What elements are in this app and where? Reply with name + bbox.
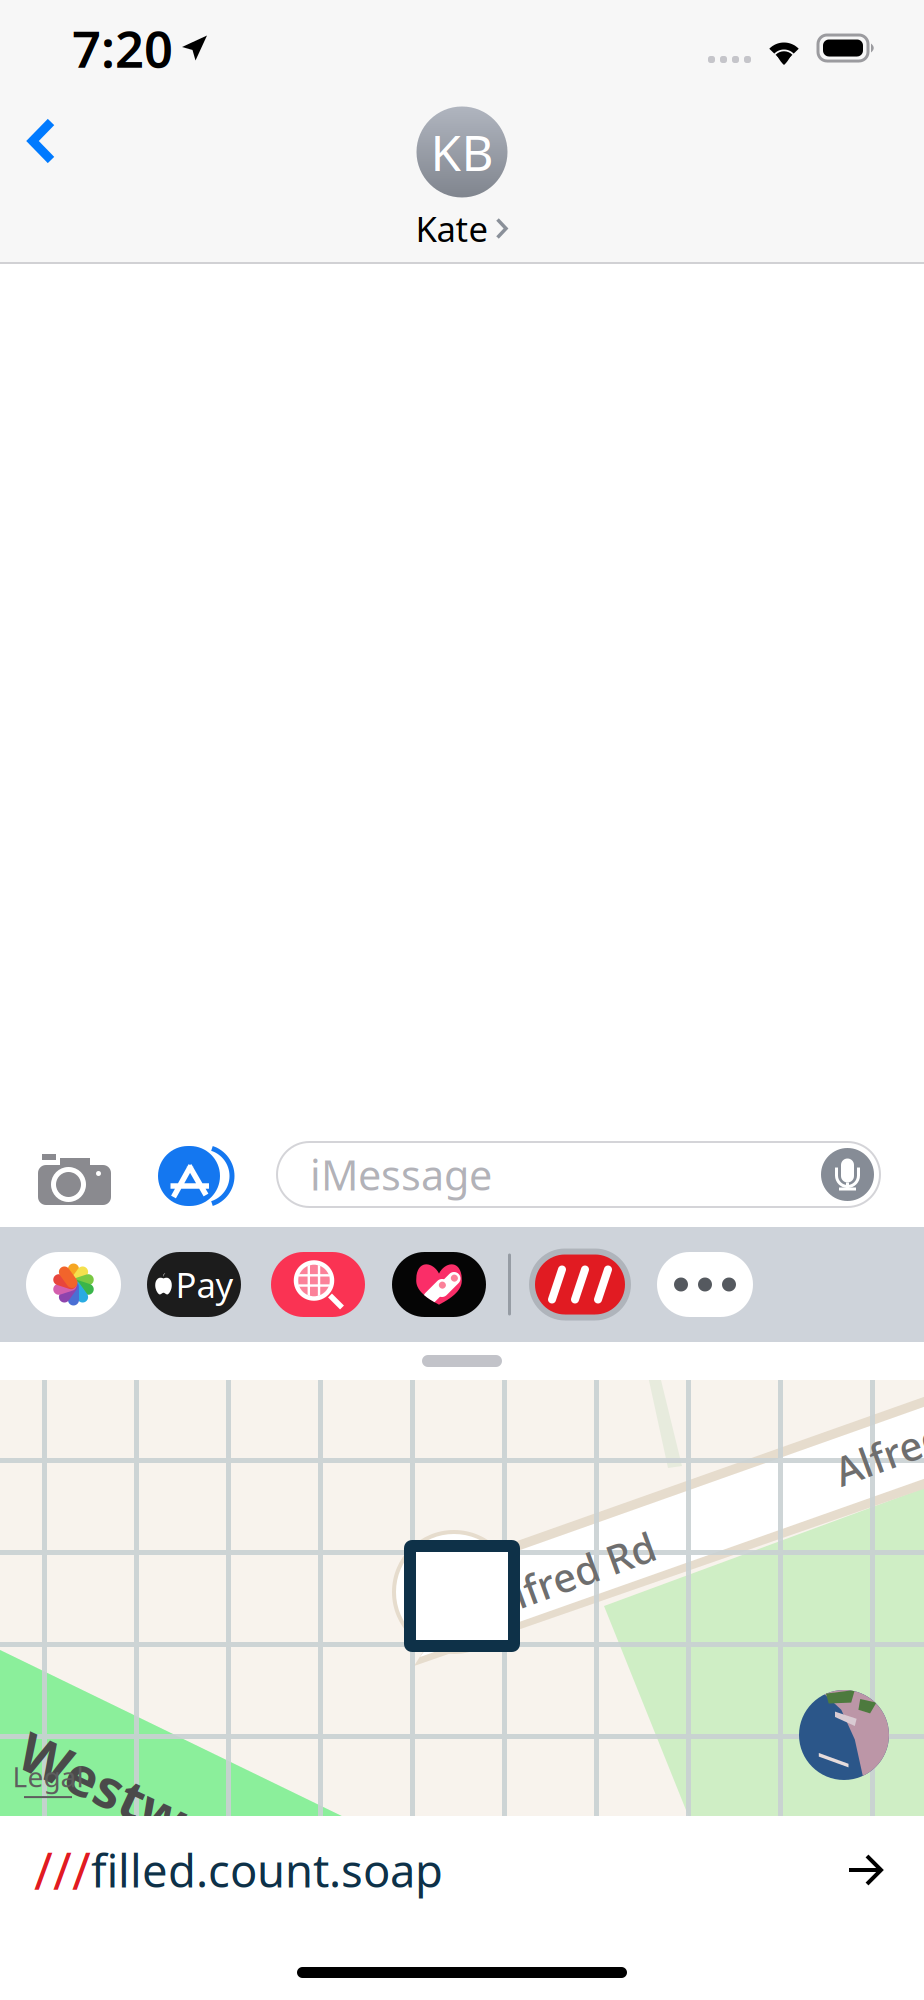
staticText: Alfred — [832, 1426, 924, 1479]
staticText: 7:20 — [72, 14, 173, 82]
button[interactable]: Apps — [158, 1111, 277, 1227]
staticText: Westway — [11, 1763, 252, 1833]
staticText: Kate — [415, 205, 488, 251]
staticText: KB — [430, 119, 493, 185]
button[interactable]: Music — [392, 1227, 508, 1342]
button[interactable]: More — [657, 1227, 753, 1342]
staticText: Alfred Rd — [484, 1547, 659, 1600]
button[interactable]: /// — [0, 1816, 924, 1924]
button[interactable]: Photos — [0, 1227, 147, 1342]
button[interactable]: iMessage — [277, 1111, 880, 1227]
button[interactable]: Camera — [0, 1111, 158, 1227]
button[interactable]: KB — [415, 106, 508, 251]
button[interactable]: what3words — [511, 1226, 657, 1342]
button[interactable]: Back — [0, 96, 96, 186]
button[interactable]: Apple Pay — [147, 1227, 271, 1342]
staticText: filled.count.soap — [91, 1840, 443, 1900]
staticText: /// — [34, 1836, 91, 1904]
staticText: Pay — [175, 1261, 233, 1307]
staticText: iMessage — [310, 1147, 492, 1202]
staticText: Legal — [12, 1758, 83, 1795]
button[interactable]: Images — [271, 1227, 392, 1342]
